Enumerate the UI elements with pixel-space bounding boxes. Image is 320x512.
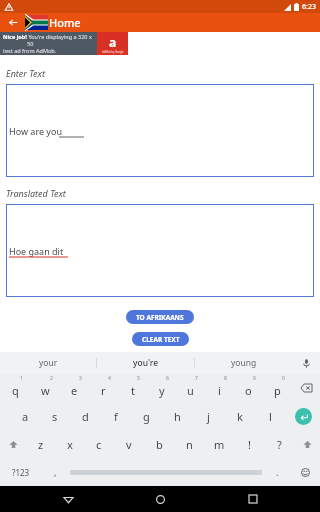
staticText: o — [245, 383, 252, 398]
staticText: w — [41, 383, 50, 398]
staticText: y — [159, 383, 165, 398]
staticText: q — [12, 383, 19, 398]
button[interactable]: 0 — [263, 374, 292, 402]
button[interactable]: z — [26, 430, 55, 458]
button[interactable]: k — [224, 402, 255, 430]
staticText: a — [22, 409, 29, 424]
button[interactable]: your — [0, 352, 96, 374]
button[interactable]: 2 — [30, 374, 60, 402]
staticText: 9 — [253, 375, 256, 382]
button[interactable]: 4 — [89, 374, 118, 402]
button[interactable]: 7 — [176, 374, 205, 402]
staticText: i — [218, 383, 221, 398]
button[interactable]: a — [10, 402, 40, 430]
button[interactable]: you're — [97, 352, 194, 374]
staticText: 3 — [79, 375, 82, 382]
button[interactable]: 8 — [205, 374, 234, 402]
button[interactable]: Enter — [286, 402, 320, 430]
button[interactable]: Space — [70, 458, 262, 486]
button[interactable]: ! — [234, 430, 264, 458]
button[interactable]: n — [174, 430, 204, 458]
button[interactable]: Back — [43, 486, 93, 512]
staticText: You're displaying a 320 x 50 — [27, 33, 97, 47]
button[interactable]: Nice job! — [0, 32, 128, 55]
staticText: Home — [49, 15, 81, 30]
staticText: e — [71, 383, 78, 398]
button[interactable]: 9 — [234, 374, 263, 402]
staticText: Enter Text — [6, 67, 45, 79]
button[interactable]: Back — [6, 15, 21, 30]
button[interactable]: . — [264, 458, 290, 486]
button[interactable]: 1 — [0, 374, 30, 402]
button[interactable]: Shift — [0, 430, 26, 458]
button[interactable]: c — [84, 430, 114, 458]
staticText: your — [39, 357, 58, 369]
staticText: v — [126, 437, 132, 452]
button[interactable]: x — [55, 430, 84, 458]
button[interactable]: Hoe gaan dit — [6, 204, 314, 297]
button[interactable]: 5 — [118, 374, 147, 402]
staticText: t — [131, 383, 135, 398]
staticText: CLEAR TEXT — [142, 335, 180, 344]
staticText: r — [101, 383, 106, 398]
staticText: ?123 — [12, 467, 30, 478]
button[interactable]: h — [162, 402, 193, 430]
button[interactable]: 3 — [60, 374, 89, 402]
staticText: 7 — [195, 375, 198, 382]
staticText: ? — [277, 437, 282, 452]
staticText: 8 — [224, 375, 227, 382]
button[interactable]: Emoji — [290, 458, 320, 486]
staticText: h — [174, 409, 181, 424]
button[interactable]: ? — [264, 430, 294, 458]
button[interactable]: l — [255, 402, 286, 430]
button[interactable]: f — [100, 402, 131, 430]
staticText: test ad from AdMob. — [3, 47, 57, 54]
button[interactable]: How are you — [6, 84, 314, 177]
button[interactable]: CLEAR TEXT — [132, 332, 189, 346]
staticText: AdMob by Google — [102, 50, 124, 54]
button[interactable]: Shift — [294, 430, 320, 458]
staticText: 5 — [137, 375, 140, 382]
button[interactable]: , — [42, 458, 68, 486]
staticText: young — [231, 357, 257, 369]
button[interactable]: TO AFRIKAANS — [126, 310, 194, 324]
button[interactable]: m — [204, 430, 234, 458]
staticText: 0 — [282, 375, 285, 382]
button[interactable]: b — [144, 430, 174, 458]
staticText: ! — [248, 437, 251, 452]
staticText: k — [237, 409, 243, 424]
button[interactable]: v — [114, 430, 144, 458]
staticText: u — [187, 383, 194, 398]
staticText: How are you — [9, 125, 62, 137]
staticText: g — [143, 409, 150, 424]
button[interactable]: 6 — [147, 374, 176, 402]
button[interactable]: Voice input — [292, 352, 320, 374]
button[interactable]: g — [131, 402, 162, 430]
staticText: Translated Text — [6, 187, 66, 199]
staticText: . — [276, 466, 279, 478]
button[interactable]: Home — [135, 486, 185, 512]
button[interactable]: s — [40, 402, 70, 430]
staticText: Hoe gaan dit — [9, 245, 64, 257]
button[interactable]: young — [195, 352, 292, 374]
button[interactable]: j — [193, 402, 224, 430]
staticText: Nice job! — [3, 33, 27, 40]
staticText: 1 — [20, 375, 23, 382]
button[interactable]: Recent apps — [228, 486, 278, 512]
staticText: 2 — [50, 375, 53, 382]
staticText: z — [38, 437, 44, 452]
staticText: f — [114, 409, 118, 424]
staticText: TO AFRIKAANS — [136, 313, 184, 322]
staticText: l — [269, 409, 272, 424]
button[interactable]: ?123 — [0, 458, 42, 486]
staticText: , — [54, 466, 57, 478]
button[interactable]: d — [70, 402, 100, 430]
staticText: p — [274, 383, 281, 398]
staticText: s — [52, 409, 58, 424]
staticText: 4 — [108, 375, 111, 382]
staticText: m — [214, 437, 225, 452]
staticText: 6 — [166, 375, 169, 382]
staticText: d — [82, 409, 89, 424]
staticText: n — [186, 437, 193, 452]
button[interactable]: Backspace — [292, 374, 320, 402]
